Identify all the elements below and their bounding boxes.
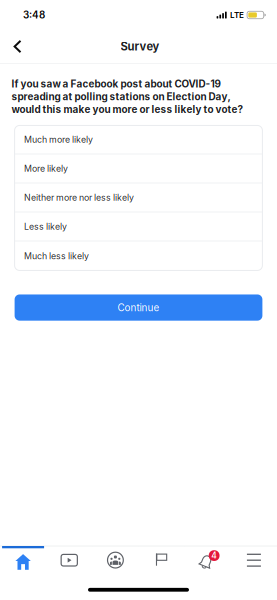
staticText: Neither more nor less likely <box>24 192 134 203</box>
button[interactable]: Much more likely <box>15 125 262 154</box>
staticText: Much more likely <box>24 134 93 145</box>
button[interactable]: Less likely <box>15 212 262 241</box>
staticText: Less likely <box>24 221 67 232</box>
button[interactable]: Notifications <box>185 547 231 573</box>
button[interactable]: Marketplace <box>138 547 185 573</box>
staticText: Survey <box>120 40 159 53</box>
staticText: 3:48 <box>23 9 45 21</box>
button[interactable]: Menu <box>231 547 277 573</box>
staticText: More likely <box>24 163 68 174</box>
staticText: Much less likely <box>24 251 89 261</box>
button[interactable]: Watch <box>46 547 92 573</box>
button[interactable]: Neither more nor less likely <box>15 183 262 212</box>
staticText: LTE <box>230 10 244 20</box>
staticText: Continue <box>117 302 159 313</box>
staticText: If you saw a Facebook post about COVID-1… <box>11 78 243 115</box>
button[interactable]: Groups <box>92 547 138 573</box>
button[interactable]: More likely <box>15 154 262 183</box>
button[interactable]: Back <box>3 31 32 62</box>
button[interactable]: Much less likely <box>15 241 262 270</box>
staticText: 4 <box>211 551 217 561</box>
button[interactable]: Continue <box>15 294 262 321</box>
button[interactable]: Home <box>0 547 46 573</box>
